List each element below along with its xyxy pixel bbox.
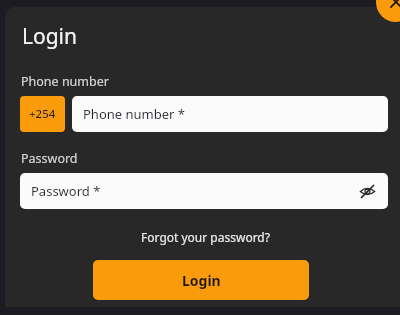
staticText: Phone number — [21, 73, 109, 90]
button[interactable]: +254 — [20, 96, 65, 132]
staticText: +254 — [29, 106, 56, 122]
button[interactable]: Password * — [20, 173, 388, 209]
staticText: Forgot your password? — [141, 229, 270, 245]
button[interactable]: Forgot your password? — [137, 225, 274, 249]
button[interactable]: Close — [376, 0, 400, 22]
button[interactable]: Login — [93, 260, 309, 300]
staticText: Phone number * — [83, 105, 185, 123]
staticText: Password * — [31, 182, 101, 200]
button[interactable]: Show password — [354, 178, 380, 204]
staticText: Password — [21, 150, 78, 167]
staticText: Login — [182, 271, 221, 290]
staticText: Login — [22, 22, 78, 51]
button[interactable]: Phone number * — [72, 96, 388, 132]
